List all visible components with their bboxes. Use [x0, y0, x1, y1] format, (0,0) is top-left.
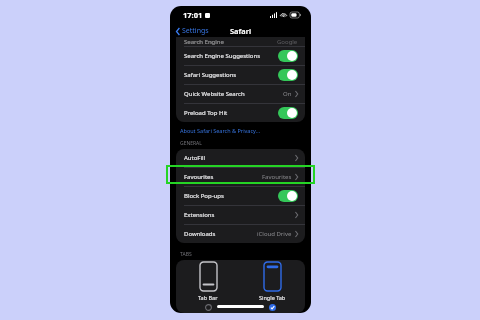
button[interactable]: Safari Suggestions [176, 66, 305, 84]
button[interactable]: Switch on [278, 69, 298, 81]
staticText: Google [277, 38, 298, 46]
button[interactable]: Quick Website Search [176, 85, 305, 103]
staticText: Preload Top Hit [184, 109, 278, 117]
staticText: Search Engine [184, 38, 277, 46]
staticText: Favourites [184, 173, 262, 181]
button[interactable]: Block Pop-ups [176, 187, 305, 205]
staticText: Quick Website Search [184, 90, 283, 98]
button[interactable]: Switch on [278, 190, 298, 202]
button[interactable]: Favourites [176, 168, 305, 186]
button[interactable]: Switch on [278, 50, 298, 62]
staticText: GENERAL [180, 140, 202, 147]
button[interactable]: Settings [174, 25, 211, 37]
staticText: Search Engine Suggestions [184, 52, 278, 60]
staticText: 17:01 [183, 10, 203, 20]
button[interactable]: AutoFill [176, 149, 305, 167]
button[interactable]: Preload Top Hit [176, 104, 305, 122]
staticText: Single Tab [259, 294, 286, 301]
button[interactable]: Search Engine [176, 37, 305, 46]
staticText: AutoFill [184, 154, 295, 162]
button[interactable]: About Safari Search & Privacy… [180, 127, 261, 134]
other: Not selected [205, 304, 212, 311]
staticText: iCloud Drive [257, 230, 292, 238]
staticText: Downloads [184, 230, 257, 238]
staticText: Extensions [184, 211, 295, 219]
staticText: Settings [182, 26, 209, 36]
button[interactable]: Extensions [176, 206, 305, 224]
button[interactable]: Tab Bar [176, 260, 240, 313]
staticText: Favourites [262, 173, 292, 181]
staticText: TABS [180, 251, 192, 258]
staticText: Safari Suggestions [184, 71, 278, 79]
staticText: On [283, 90, 292, 98]
button[interactable]: Switch on [278, 107, 298, 119]
staticText: Block Pop-ups [184, 192, 278, 200]
button[interactable]: Search Engine Suggestions [176, 47, 305, 65]
button[interactable]: Downloads [176, 225, 305, 243]
staticText: Tab Bar [198, 294, 218, 301]
button[interactable]: Single Tab [240, 260, 305, 313]
staticText: Safari [230, 26, 252, 36]
other: Selected [269, 304, 276, 311]
